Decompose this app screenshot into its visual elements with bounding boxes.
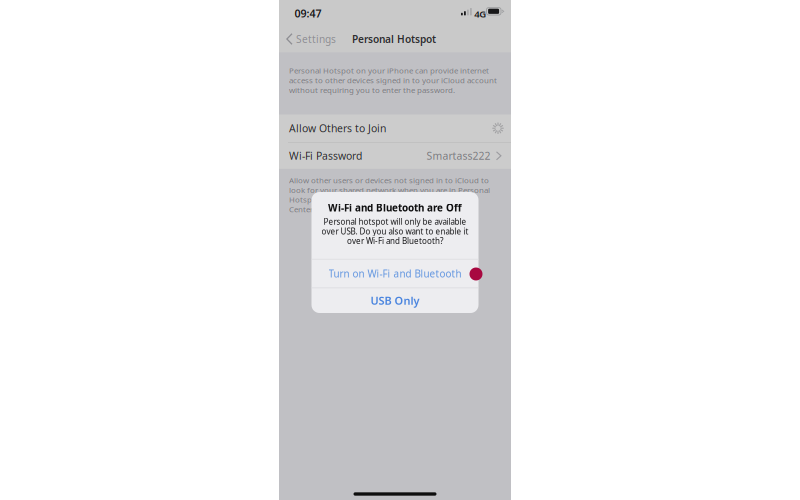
staticText: over Wi-Fi and Bluetooth? <box>347 236 443 246</box>
staticText: Allow Others to Join <box>289 121 386 135</box>
staticText: Allow other users or devices not signed … <box>289 175 489 185</box>
button[interactable]: Allow Others to Join <box>279 114 511 142</box>
staticText: Personal hotspot will only be available <box>323 216 466 227</box>
button[interactable]: USB Only <box>311 288 478 313</box>
button[interactable]: Wi-Fi Password <box>279 143 511 169</box>
button[interactable]: Settings <box>279 26 341 52</box>
staticText: Turn on Wi-Fi and Bluetooth <box>328 267 461 280</box>
staticText: Wi-Fi and Bluetooth are Off <box>328 201 462 214</box>
staticText: 09:47 <box>294 6 321 21</box>
staticText: 4G <box>474 7 486 20</box>
staticText: Center. <box>289 204 314 215</box>
staticText: without requiring you to enter the passw… <box>289 84 455 95</box>
staticText: Hotspot settings or when you turn it on … <box>289 194 476 205</box>
staticText: USB Only <box>370 293 419 308</box>
staticText: access to other devices signed in to you… <box>289 75 497 85</box>
staticText: Settings <box>296 32 336 46</box>
staticText: look for your shared network when you ar… <box>289 184 490 195</box>
staticText: over USB. Do you also want to enable it <box>321 226 468 237</box>
staticText: Smartass222 <box>426 149 490 163</box>
button[interactable]: Turn on Wi-Fi and Bluetooth <box>311 260 478 288</box>
staticText: Personal Hotspot <box>352 32 436 46</box>
staticText: Personal Hotspot on your iPhone can prov… <box>289 65 489 76</box>
staticText: Wi-Fi Password <box>289 149 362 163</box>
